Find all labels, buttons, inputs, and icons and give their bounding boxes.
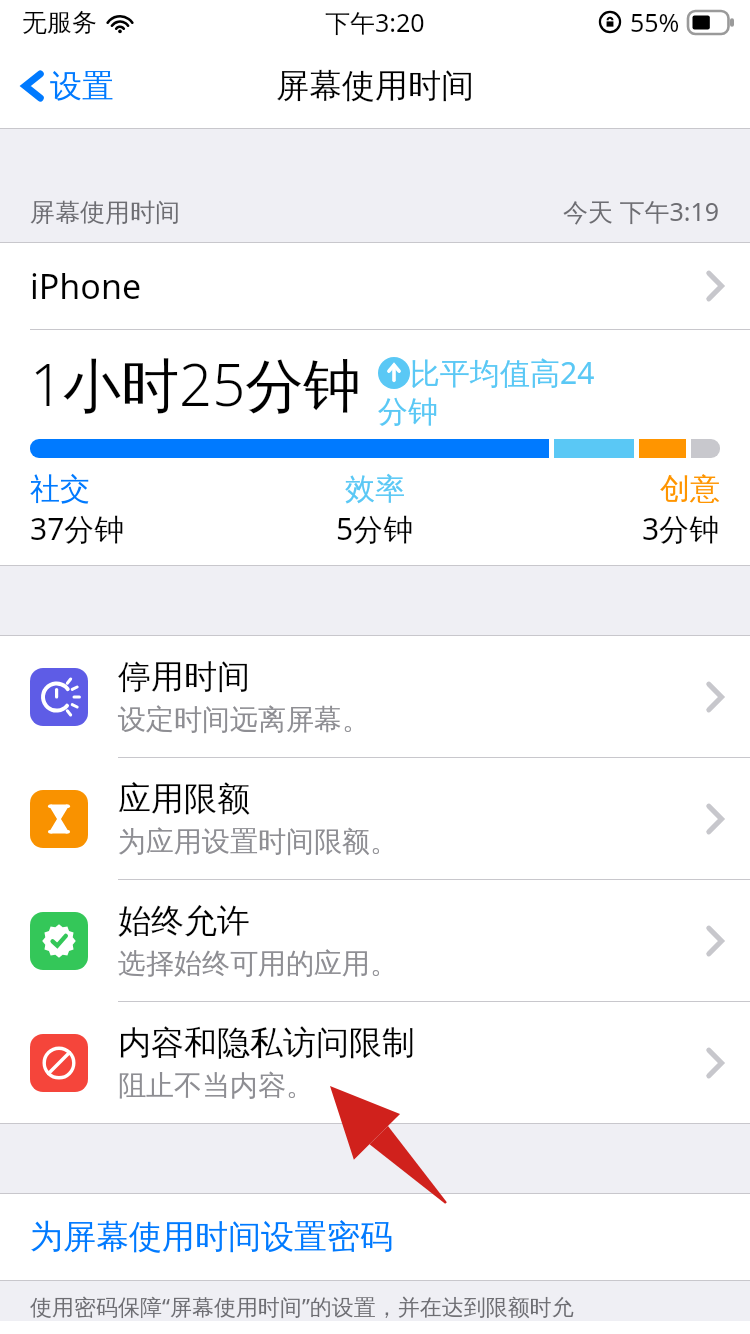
button[interactable]: 停用时间 [0, 636, 750, 758]
staticText: 5分钟 [336, 508, 414, 549]
staticText: 效率 [345, 470, 405, 508]
button[interactable]: 应用限额 [0, 758, 750, 880]
button[interactable]: iPhone [0, 243, 750, 329]
staticText: 无服务 [22, 7, 97, 38]
staticText: 55% [630, 5, 680, 39]
staticText: 为应用设置时间限额。 [118, 824, 398, 859]
staticText: 1小时25分钟 [30, 344, 362, 423]
staticText: 下午3:20 [325, 5, 425, 39]
button[interactable]: 始终允许 [0, 880, 750, 1002]
button[interactable]: 为屏幕使用时间设置密码 [0, 1194, 750, 1280]
button[interactable]: 设置 [16, 58, 118, 114]
staticText: 应用限额 [118, 778, 250, 820]
staticText: 为屏幕使用时间设置密码 [30, 1216, 393, 1258]
staticText: 今天 下午3:19 [563, 194, 720, 228]
staticText: 内容和隐私访问限制 [118, 1022, 415, 1064]
staticText: 屏幕使用时间 [276, 65, 474, 107]
staticText: 比平均值高24 [410, 352, 595, 393]
staticText: iPhone [30, 263, 142, 309]
staticText: 创意 [660, 470, 720, 508]
staticText: 选择始终可用的应用。 [118, 946, 398, 981]
staticText: 阻止不当内容。 [118, 1068, 314, 1103]
staticText: 分钟 [378, 393, 438, 431]
staticText: 使用密码保障“屏幕使用时间”的设置，并在达到限额时允 [30, 1291, 574, 1321]
staticText: 3分钟 [642, 508, 720, 549]
staticText: 设置 [50, 66, 114, 106]
staticText: 屏幕使用时间 [30, 197, 180, 228]
button[interactable]: 内容和隐私访问限制 [0, 1002, 750, 1123]
staticText: 停用时间 [118, 656, 250, 698]
staticText: 始终允许 [118, 900, 250, 942]
staticText: 社交 [30, 470, 90, 508]
staticText: 37分钟 [30, 508, 125, 549]
staticText: 设定时间远离屏幕。 [118, 702, 370, 737]
